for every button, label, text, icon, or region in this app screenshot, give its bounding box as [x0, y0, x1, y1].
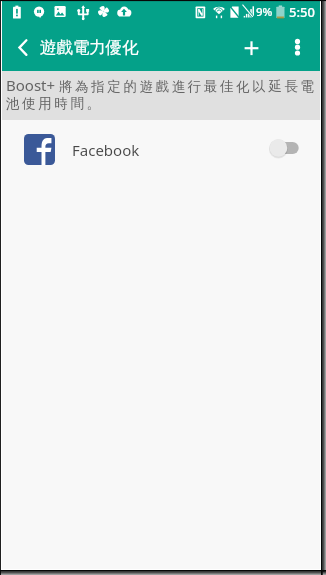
button[interactable]: Toggle Facebook — [260, 128, 298, 172]
staticText: Boost+ 將為指定的遊戲進行最佳化以延長電 池使用時間。 — [6, 75, 317, 112]
button[interactable]: More options — [280, 23, 318, 71]
button[interactable]: Add — [234, 23, 272, 71]
staticText: 9% — [256, 4, 273, 20]
staticText: 5:50 — [289, 3, 315, 21]
button[interactable]: Back — [2, 23, 42, 71]
staticText: 遊戲電力優化 — [40, 37, 139, 58]
button[interactable]: Facebook — [2, 120, 320, 179]
staticText: Facebook — [72, 140, 140, 160]
